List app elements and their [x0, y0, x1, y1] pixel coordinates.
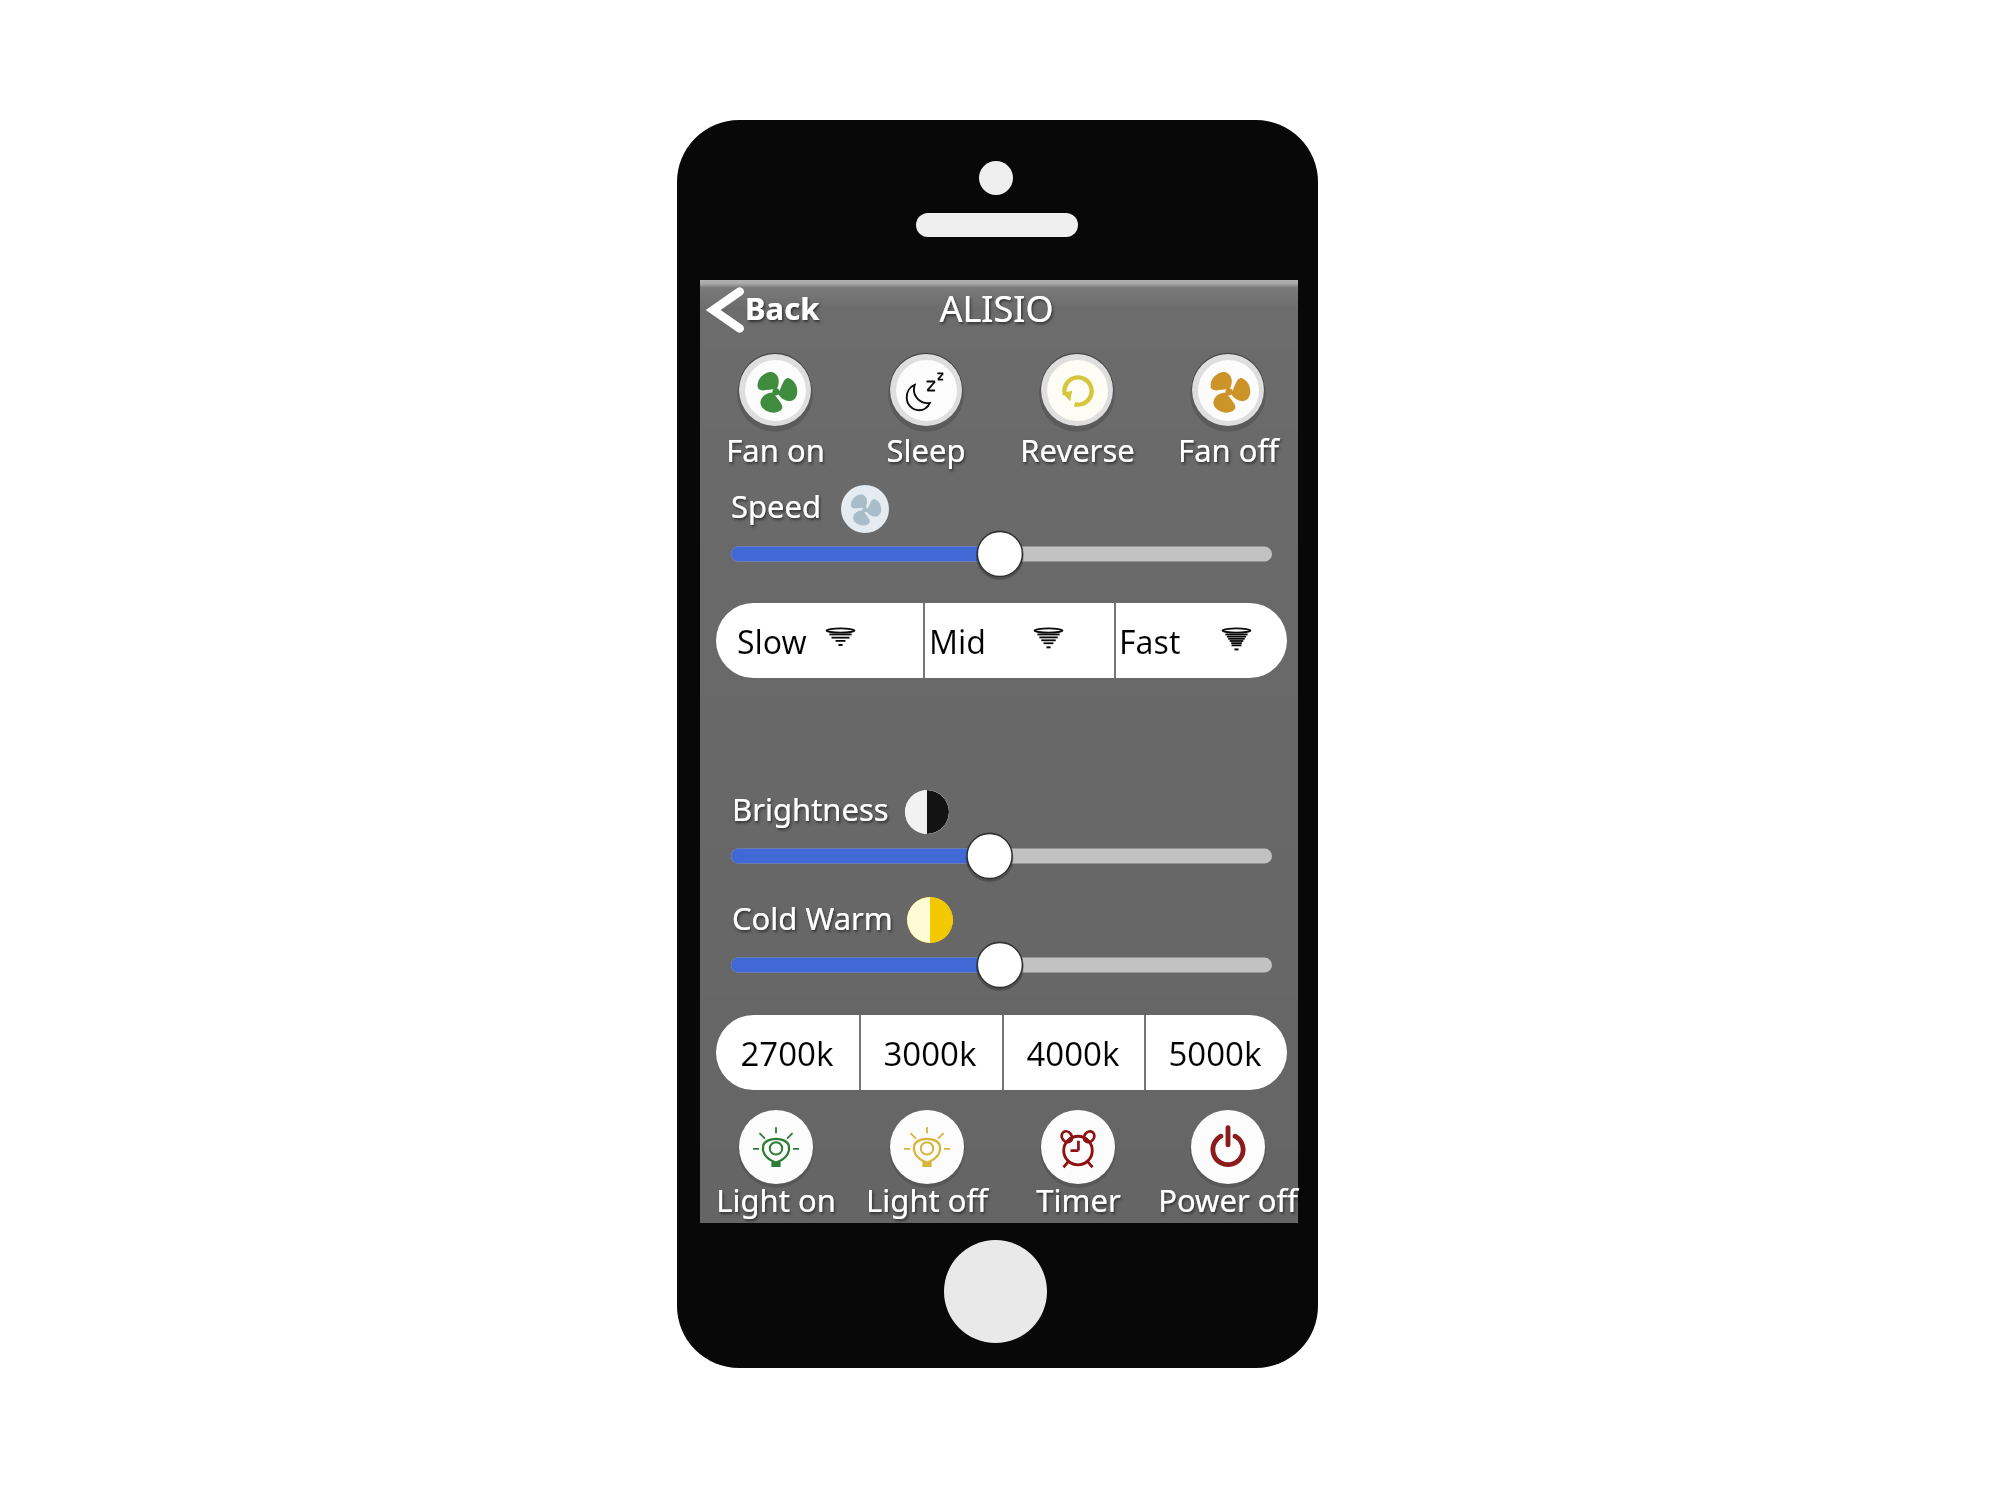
button[interactable]: Power off	[1166, 1106, 1290, 1222]
button[interactable]: Speed slider	[731, 530, 1272, 578]
button[interactable]: Brightness slider	[731, 832, 1272, 880]
staticText: Slow	[737, 620, 807, 664]
staticText: Back	[745, 287, 820, 329]
button[interactable]	[716, 1015, 859, 1090]
button[interactable]: Timer	[1016, 1106, 1140, 1222]
button[interactable]: Reverse	[1017, 348, 1137, 464]
button[interactable]: Fan on	[715, 348, 835, 464]
staticText: Power off	[1158, 1179, 1298, 1221]
staticText: 4000k	[1026, 1031, 1120, 1076]
staticText: Light off	[866, 1179, 988, 1221]
staticText: Fan off	[1178, 429, 1279, 471]
staticText: 3000k	[883, 1031, 977, 1076]
staticText: Fast	[1119, 620, 1181, 664]
staticText: Light on	[716, 1179, 836, 1221]
staticText: Fan on	[726, 429, 825, 471]
button[interactable]: Sleep	[866, 348, 986, 464]
staticText: Timer	[1036, 1179, 1121, 1221]
button[interactable]	[716, 603, 923, 678]
button[interactable]	[859, 1015, 1002, 1090]
staticText: 5000k	[1168, 1031, 1262, 1076]
button[interactable]	[1002, 1015, 1144, 1090]
button[interactable]	[1144, 1015, 1287, 1090]
button[interactable]: Light off	[865, 1106, 989, 1222]
button[interactable]: Fan off	[1168, 348, 1288, 464]
staticText: Reverse	[1020, 429, 1135, 471]
staticText: Cold Warm	[732, 897, 893, 939]
staticText: ALISIO	[939, 284, 1054, 333]
staticText: Mid	[929, 620, 986, 664]
button[interactable]	[1114, 603, 1287, 678]
staticText: Brightness	[732, 788, 889, 830]
button[interactable]: Light on	[714, 1106, 838, 1222]
staticText: Sleep	[886, 429, 966, 471]
staticText: Speed	[731, 485, 822, 527]
button[interactable]: Cold warm slider	[731, 941, 1272, 989]
button[interactable]	[923, 603, 1114, 678]
button[interactable]: Back	[704, 282, 832, 336]
staticText: 2700k	[740, 1031, 834, 1076]
